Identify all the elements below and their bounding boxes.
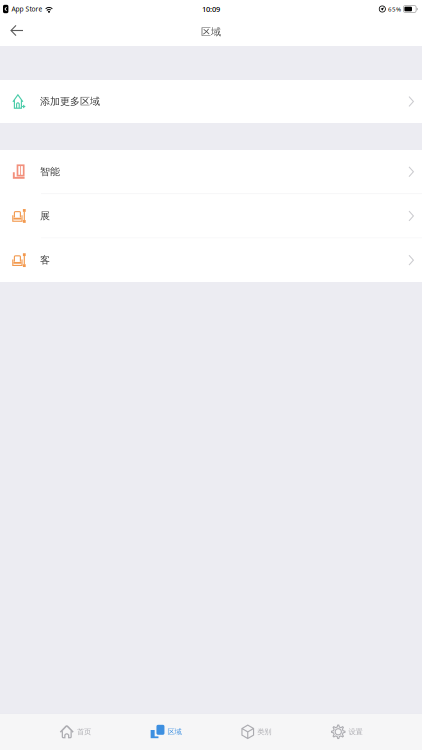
button[interactable]: 设置 bbox=[301, 714, 392, 750]
staticText: 类别 bbox=[257, 727, 271, 736]
staticText: 添加更多区域 bbox=[40, 95, 100, 108]
staticText: App Store bbox=[11, 5, 42, 13]
button[interactable]: 类别 bbox=[211, 714, 301, 750]
button[interactable]: 首页 bbox=[30, 714, 120, 750]
button[interactable]: 展 bbox=[0, 194, 422, 238]
staticText: 智能 bbox=[40, 166, 60, 178]
staticText: 10:09 bbox=[202, 4, 220, 14]
button[interactable]: 添加更多区域 bbox=[0, 80, 422, 123]
staticText: 区域 bbox=[167, 727, 181, 736]
staticText: 展 bbox=[40, 210, 50, 222]
button[interactable]: 区域 bbox=[120, 714, 211, 750]
staticText: 区域 bbox=[201, 26, 221, 38]
staticText: 65% bbox=[388, 5, 401, 13]
button[interactable]: 智能 bbox=[0, 150, 422, 193]
staticText: 设置 bbox=[348, 727, 362, 736]
staticText: 首页 bbox=[77, 727, 91, 736]
button[interactable]: 客 bbox=[0, 238, 422, 282]
staticText: 客 bbox=[40, 254, 50, 266]
button[interactable]: Back bbox=[0, 19, 37, 45]
